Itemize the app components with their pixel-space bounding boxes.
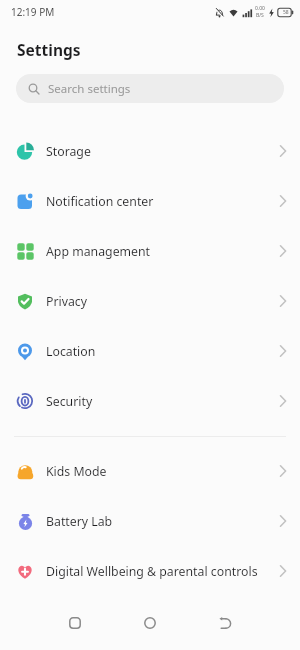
button[interactable]: App management [0, 226, 300, 276]
staticText: Digital Wellbeing & parental controls [46, 563, 279, 580]
staticText: Search settings [48, 81, 131, 97]
staticText: Kids Mode [46, 463, 279, 480]
button[interactable]: Battery Lab [0, 496, 300, 546]
button[interactable]: Digital Wellbeing & parental controls [0, 546, 300, 596]
staticText: 0.00 [255, 5, 265, 12]
button[interactable]: Location [0, 326, 300, 376]
button[interactable] [45, 596, 105, 650]
staticText: B/S [256, 12, 264, 19]
button[interactable] [120, 596, 180, 650]
staticText: Storage [46, 143, 279, 160]
button[interactable]: Privacy [0, 276, 300, 326]
staticText: Privacy [46, 293, 279, 310]
staticText: Battery Lab [46, 513, 279, 530]
button[interactable]: Storage [0, 126, 300, 176]
staticText: 12:19 PM [11, 5, 55, 19]
button[interactable] [195, 596, 255, 650]
button[interactable]: Search settings [16, 74, 284, 103]
staticText: App management [46, 243, 279, 260]
button[interactable]: Security [0, 376, 300, 426]
button[interactable]: Notification center [0, 176, 300, 226]
staticText: Security [46, 393, 279, 410]
staticText: Settings [17, 39, 81, 60]
staticText: Location [46, 343, 279, 360]
staticText: Notification center [46, 193, 279, 210]
staticText: 58 [283, 9, 289, 16]
button[interactable]: Kids Mode [0, 446, 300, 496]
